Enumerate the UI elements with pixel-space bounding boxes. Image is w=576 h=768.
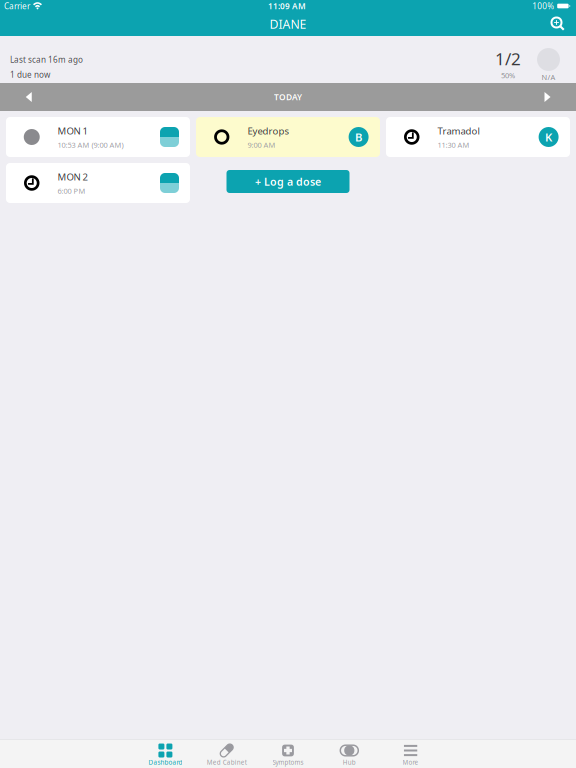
button[interactable]: MON 1 xyxy=(6,117,190,157)
staticText: More xyxy=(403,758,419,766)
staticText: B xyxy=(355,129,362,145)
button[interactable]: Tramadol xyxy=(386,117,570,157)
staticText: MON 1 xyxy=(57,124,87,137)
staticText: 100% xyxy=(532,0,554,12)
staticText: N/A xyxy=(541,72,555,82)
staticText: Med Cabinet xyxy=(207,758,247,766)
staticText: Tramadol xyxy=(437,124,479,137)
button[interactable]: MON 2 xyxy=(6,163,190,203)
staticText: 50% xyxy=(501,70,515,80)
staticText: 10:53 AM (9:00 AM) xyxy=(57,140,123,150)
staticText: 11:30 AM xyxy=(437,140,469,150)
staticText: Eyedrops xyxy=(247,124,289,137)
staticText: 1 due now xyxy=(10,69,50,80)
button[interactable]: Search xyxy=(543,12,573,36)
button[interactable]: Previous day xyxy=(0,83,57,111)
button[interactable]: Next day xyxy=(519,83,576,111)
staticText: TODAY xyxy=(274,91,302,103)
button[interactable]: More xyxy=(380,740,441,768)
staticText: MON 2 xyxy=(57,170,87,183)
staticText: 11:09 AM xyxy=(268,0,306,12)
button[interactable]: Symptoms xyxy=(257,740,319,768)
button[interactable]: Hub xyxy=(319,740,380,768)
staticText: Dashboard xyxy=(148,758,182,766)
button[interactable]: + Log a dose xyxy=(226,170,349,193)
staticText: Symptoms xyxy=(272,758,303,766)
staticText: 6:00 PM xyxy=(57,186,85,196)
staticText: + Log a dose xyxy=(255,174,321,189)
staticText: 1/2 xyxy=(495,47,521,70)
button[interactable]: Dashboard xyxy=(135,740,196,768)
staticText: DIANE xyxy=(269,16,306,32)
button[interactable]: Eyedrops xyxy=(196,117,380,157)
staticText: 9:00 AM xyxy=(247,140,275,150)
staticText: K xyxy=(545,129,552,145)
button[interactable]: Med Cabinet xyxy=(196,740,257,768)
staticText: Carrier xyxy=(4,0,30,12)
staticText: Hub xyxy=(343,758,356,766)
staticText: Last scan 16m ago xyxy=(10,54,83,65)
